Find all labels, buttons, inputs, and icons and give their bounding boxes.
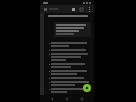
button[interactable]: Menu (42, 6, 48, 12)
button[interactable]: Share (70, 6, 76, 12)
button[interactable]: Recent apps (79, 96, 85, 102)
button[interactable]: Compose (83, 84, 91, 92)
button[interactable]: Back (49, 96, 55, 102)
button[interactable]: Home (64, 96, 70, 102)
button[interactable]: New chat (78, 6, 84, 12)
button[interactable]: More options (86, 6, 92, 12)
